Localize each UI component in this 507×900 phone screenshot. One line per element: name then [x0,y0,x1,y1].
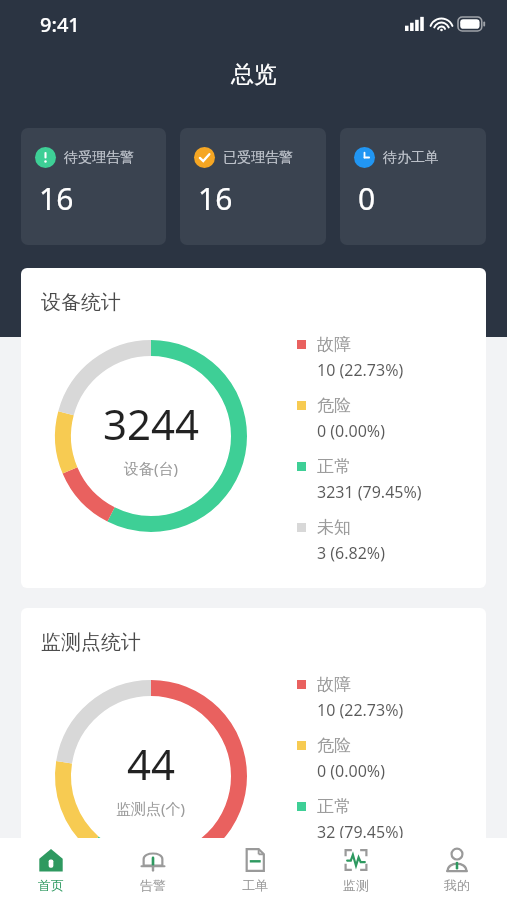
staticText: 待受理告警 [64,149,134,167]
button[interactable]: 首页 [0,838,102,900]
staticText: 3 (6.82%) [317,542,385,564]
staticText: 10 (22.73%) [317,359,404,381]
staticText: 16 [39,178,74,219]
staticText: 3244 [103,395,200,452]
staticText: 总览 [231,60,277,89]
other: 我的 [444,847,470,873]
button[interactable]: 我的 [406,838,507,900]
button[interactable]: 监测 [305,838,406,900]
staticText: 故障 [317,674,351,695]
staticText: 告警 [140,877,166,893]
other: 首页 [38,847,64,873]
staticText: 我的 [444,877,470,893]
button[interactable]: 监测点统计 [21,608,486,900]
staticText: 监测 [343,877,369,893]
staticText: 32 (79.45%) [317,821,404,843]
staticText: 9:41 [40,11,80,38]
staticText: 待办工单 [383,149,439,167]
staticText: 16 [198,178,233,219]
button[interactable]: 已受理告警 [180,128,326,245]
button[interactable]: 工单 [204,838,305,900]
button[interactable]: 待受理告警 [21,128,166,245]
staticText: 正常 [317,796,351,817]
staticText: 监测点统计 [41,630,141,655]
other: 工单 [242,847,268,873]
staticText: 设备统计 [41,290,121,315]
staticText: 0 [358,178,376,219]
staticText: 0 (0.00%) [317,420,385,442]
staticText: 44 [127,735,176,792]
staticText: 已受理告警 [223,149,293,167]
staticText: 10 (22.73%) [317,699,404,721]
staticText: 0 (0.00%) [317,760,385,782]
staticText: 正常 [317,456,351,477]
staticText: 危险 [317,395,351,416]
button[interactable]: 告警 [102,838,204,900]
staticText: 危险 [317,735,351,756]
other: 告警 [140,847,166,873]
staticText: 3231 (79.45%) [317,481,422,503]
staticText: 监测点(个) [116,798,186,818]
staticText: 首页 [38,877,64,893]
button[interactable]: 设备统计 [21,268,486,588]
other: 监测 [343,847,369,873]
staticText: 2 (6.82%) [317,882,385,900]
staticText: 未知 [317,517,351,538]
staticText: 工单 [242,877,268,893]
staticText: 未知 [317,857,351,878]
staticText: 故障 [317,334,351,355]
button[interactable]: 待办工单 [340,128,486,245]
staticText: 设备(台) [124,458,179,478]
